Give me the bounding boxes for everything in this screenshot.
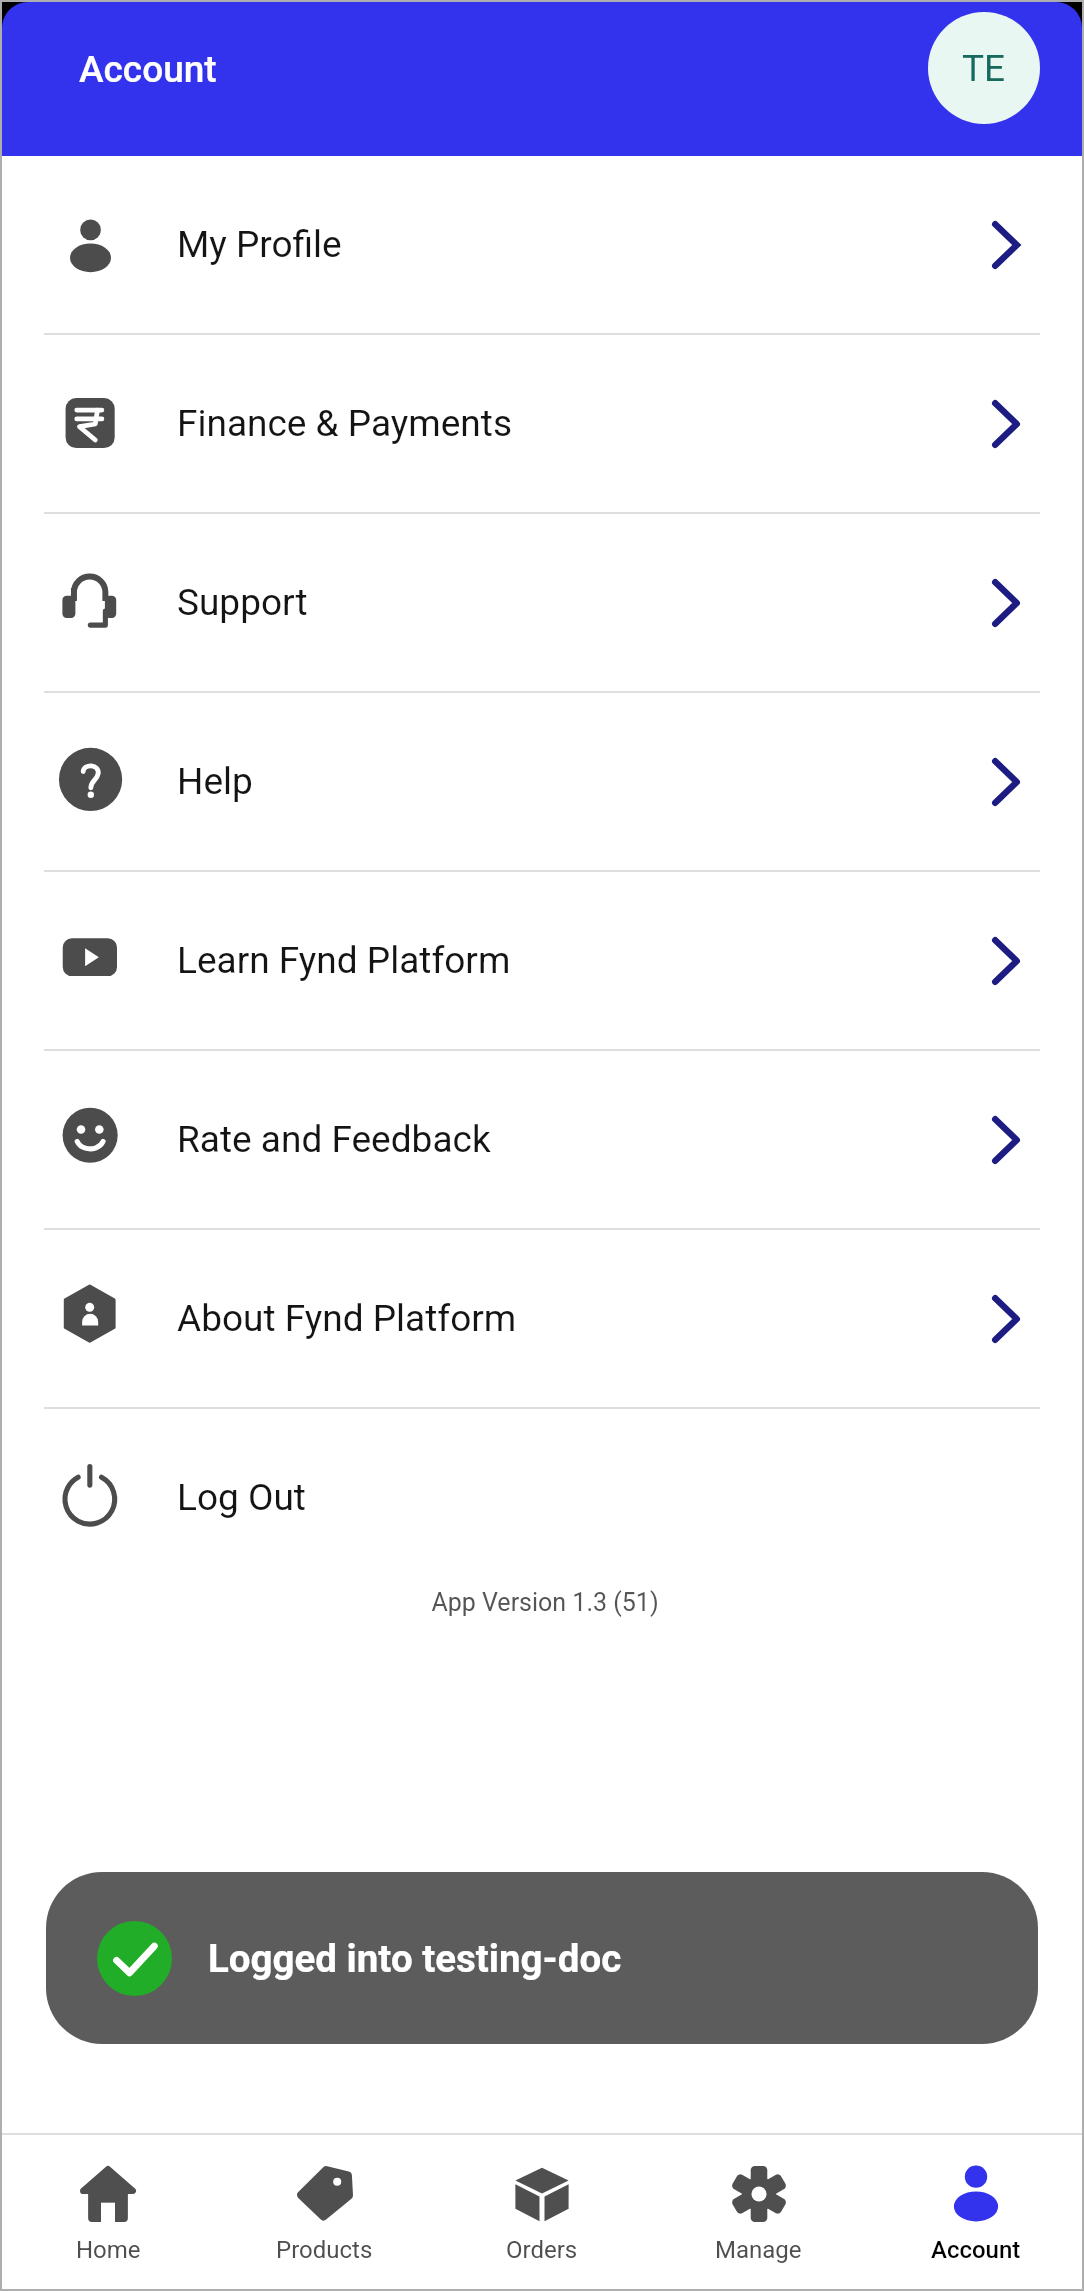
button[interactable]: Learn Fynd Platform <box>0 872 1084 1049</box>
button[interactable]: Account <box>867 2135 1084 2291</box>
button[interactable]: Products <box>216 2135 433 2291</box>
staticText: Orders <box>506 2236 578 2264</box>
button[interactable]: Manage <box>650 2135 867 2291</box>
staticText: Log Out <box>177 1476 306 1519</box>
button[interactable]: Profile avatar TE <box>928 12 1040 124</box>
button[interactable]: Log Out <box>0 1409 1084 1586</box>
staticText: Account <box>79 48 217 91</box>
button[interactable]: My Profile <box>0 156 1084 333</box>
staticText: App Version 1.3 (51) <box>6 1588 1084 1617</box>
staticText: Products <box>276 2236 373 2264</box>
button[interactable]: Help <box>0 693 1084 870</box>
button[interactable]: About Fynd Platform <box>0 1230 1084 1407</box>
staticText: Learn Fynd Platform <box>177 939 511 982</box>
staticText: Finance & Payments <box>177 402 513 445</box>
staticText: Help <box>177 760 253 803</box>
staticText: Account <box>931 2236 1021 2264</box>
staticText: Support <box>177 581 308 624</box>
staticText: Home <box>76 2236 141 2264</box>
staticText: My Profile <box>177 223 342 266</box>
button[interactable]: Rate and Feedback <box>0 1051 1084 1228</box>
button[interactable]: Orders <box>433 2135 650 2291</box>
button[interactable]: Support <box>0 514 1084 691</box>
button[interactable]: Finance & Payments <box>0 335 1084 512</box>
staticText: Rate and Feedback <box>177 1118 491 1161</box>
staticText: TE <box>962 47 1006 90</box>
button[interactable]: Logged into testing-doc <box>46 1872 1038 2044</box>
staticText: Logged into testing-doc <box>208 1936 622 1981</box>
staticText: Manage <box>715 2236 802 2264</box>
button[interactable]: Home <box>0 2135 216 2291</box>
staticText: About Fynd Platform <box>177 1297 517 1340</box>
